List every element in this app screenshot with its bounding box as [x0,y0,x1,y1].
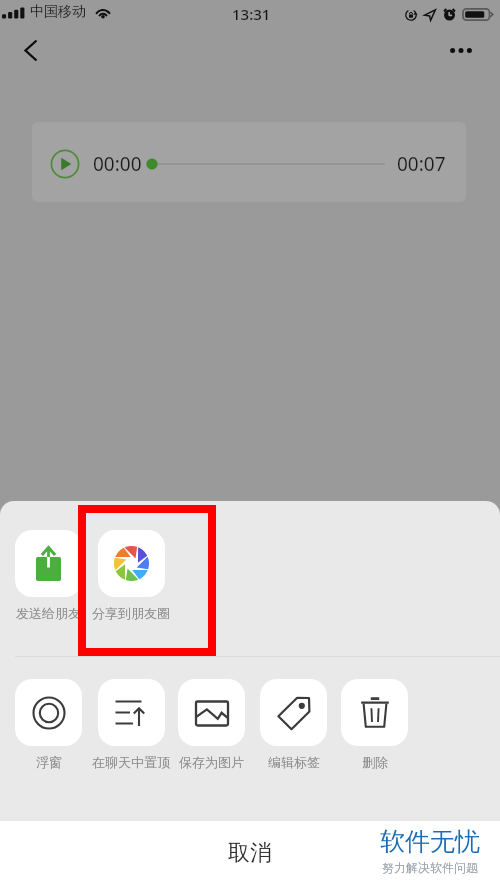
staticText: 13:31 [232,4,271,24]
staticText: 取消 [228,839,272,867]
button[interactable]: Back [8,28,54,74]
button[interactable]: 00:00 [32,122,466,202]
button[interactable]: 发送给朋友 [15,530,82,621]
staticText: 编辑标签 [268,754,320,770]
staticText: 中国移动 [30,3,86,21]
staticText: 00:00 [93,151,142,177]
staticText: 浮窗 [36,754,62,770]
button[interactable]: 编辑标签 [260,679,327,770]
button[interactable]: More options [438,28,484,74]
staticText: 00:07 [397,151,446,177]
button[interactable]: 分享到朋友圈 [92,530,170,621]
staticText: 分享到朋友圈 [92,605,170,621]
button[interactable]: 在聊天中置顶 [92,679,170,770]
staticText: 软件无忧 [380,826,480,857]
button[interactable]: 取消 [0,821,500,889]
button[interactable]: 保存为图片 [178,679,245,770]
button[interactable]: 删除 [341,679,408,770]
staticText: 发送给朋友 [16,605,81,621]
button[interactable]: 浮窗 [15,679,82,770]
staticText: 保存为图片 [179,754,244,770]
staticText: 删除 [362,754,388,770]
staticText: 在聊天中置顶 [92,754,170,770]
staticText: 努力解决软件问题 [382,860,478,875]
